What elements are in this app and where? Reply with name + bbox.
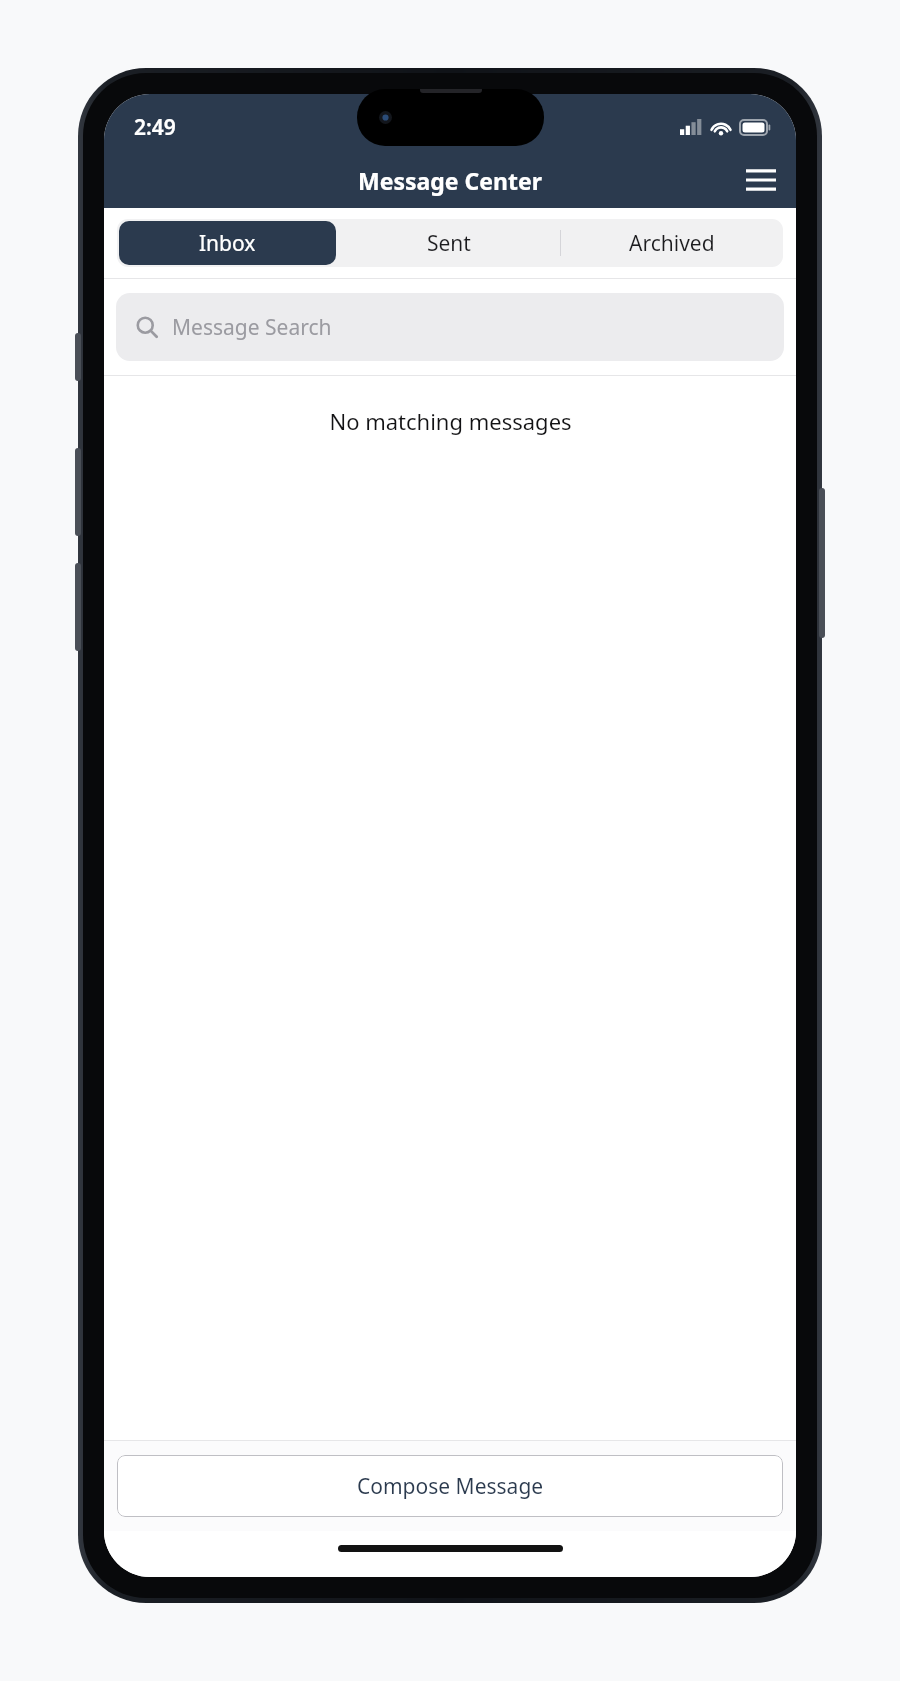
staticText: Compose Message <box>357 1472 544 1501</box>
staticText: Archived <box>629 229 715 258</box>
button[interactable]: Message Search <box>116 293 784 361</box>
button[interactable]: Inbox <box>119 221 336 265</box>
staticText: Message Center <box>358 165 542 196</box>
staticText: No matching messages <box>329 406 572 436</box>
staticText: Inbox <box>199 229 256 258</box>
button[interactable]: Menu <box>736 155 786 205</box>
button[interactable]: Compose Message <box>117 1455 783 1517</box>
button[interactable]: Sent <box>340 221 558 265</box>
staticText: Message Search <box>172 313 332 342</box>
button[interactable]: Archived <box>563 221 781 265</box>
staticText: 2:49 <box>134 113 176 142</box>
staticText: Sent <box>427 229 471 258</box>
